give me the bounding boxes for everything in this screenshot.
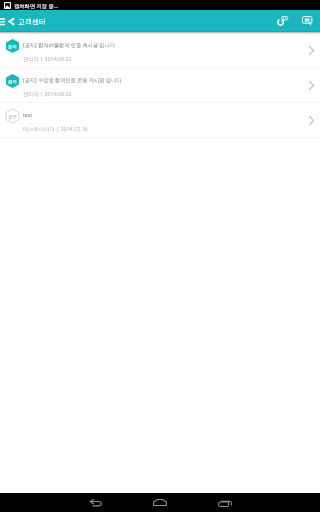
button[interactable]: Chat	[296, 10, 318, 32]
staticText: 테스트아이디 | 2014.12.16	[23, 125, 88, 132]
button[interactable]: Navigate up	[8, 10, 14, 32]
staticText: 캡쳐화면 저장 중...	[14, 2, 59, 9]
button[interactable]: Recent apps	[202, 493, 248, 512]
button[interactable]: Home	[137, 493, 183, 512]
button[interactable]: 질문	[0, 103, 320, 138]
staticText: 공지	[8, 79, 17, 84]
staticText: 질문	[8, 114, 17, 119]
button[interactable]: 공지	[0, 33, 320, 68]
button[interactable]: Call customer service	[271, 10, 293, 32]
button[interactable]: Open navigation drawer	[0, 10, 7, 32]
button[interactable]: 공지	[0, 68, 320, 103]
staticText: [공지] 합격or불합격 인증 예시글 입니다	[23, 41, 115, 48]
staticText: 고객센터	[18, 17, 46, 26]
button[interactable]: Back	[72, 493, 118, 512]
staticText: 공지	[8, 44, 17, 49]
staticText: test	[23, 111, 33, 118]
staticText: 관리자 | 2014.06.02	[23, 90, 72, 97]
staticText: [공지] 수강생 합격인증 전용 게시판 입니다	[23, 76, 122, 83]
staticText: 관리자 | 2014.06.02	[23, 55, 72, 62]
